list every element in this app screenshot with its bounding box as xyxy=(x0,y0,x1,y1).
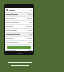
button[interactable] xyxy=(5,37,33,41)
button[interactable] xyxy=(5,25,33,29)
button[interactable] xyxy=(5,41,33,45)
button[interactable]: Back xyxy=(5,8,33,12)
button[interactable] xyxy=(5,13,33,17)
button[interactable] xyxy=(5,29,33,33)
button[interactable] xyxy=(5,17,33,21)
button[interactable] xyxy=(5,33,33,37)
button[interactable] xyxy=(5,21,33,25)
button[interactable] xyxy=(5,50,33,51)
button[interactable]: Submit xyxy=(7,46,31,49)
